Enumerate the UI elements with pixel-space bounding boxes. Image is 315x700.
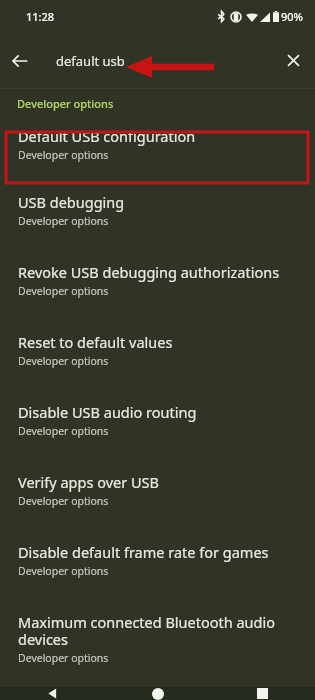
- staticText: Developer options: [18, 564, 109, 578]
- staticText: Revoke USB debugging authorizations: [18, 262, 280, 282]
- button[interactable]: Disable default frame rate for games: [0, 530, 315, 600]
- staticText: default usb: [56, 52, 125, 70]
- button[interactable]: USB debugging: [0, 180, 315, 250]
- button[interactable]: Verify apps over USB: [0, 460, 315, 530]
- staticText: Disable USB audio routing: [18, 402, 197, 422]
- staticText: Reset to default values: [18, 332, 173, 352]
- staticText: Developer options: [18, 284, 109, 298]
- staticText: Developer options: [18, 148, 109, 162]
- staticText: Developer options: [18, 651, 109, 665]
- button[interactable]: Maximum connected Bluetooth audio device…: [0, 600, 315, 687]
- staticText: Developer options: [18, 494, 109, 508]
- staticText: USB debugging: [18, 192, 125, 212]
- button[interactable]: Back: [0, 687, 105, 700]
- button[interactable]: Clear search: [280, 47, 307, 74]
- staticText: Developer options: [18, 424, 109, 438]
- button[interactable]: Recent apps: [210, 687, 315, 700]
- button[interactable]: Back: [6, 47, 33, 74]
- staticText: Developer options: [18, 354, 109, 368]
- staticText: Developer options: [18, 214, 109, 228]
- button[interactable]: Reset to default values: [0, 320, 315, 390]
- staticText: 90%: [281, 9, 303, 24]
- staticText: Verify apps over USB: [18, 472, 159, 492]
- staticText: Default USB configuration: [18, 126, 196, 146]
- staticText: Developer options: [17, 96, 114, 111]
- button[interactable]: Disable USB audio routing: [0, 390, 315, 460]
- button[interactable]: Default USB configuration: [0, 117, 315, 180]
- staticText: Maximum connected Bluetooth audio device…: [18, 612, 301, 649]
- staticText: Disable default frame rate for games: [18, 542, 269, 562]
- staticText: 11:28: [26, 9, 55, 24]
- button[interactable]: Revoke USB debugging authorizations: [0, 250, 315, 320]
- button[interactable]: Home: [105, 687, 210, 700]
